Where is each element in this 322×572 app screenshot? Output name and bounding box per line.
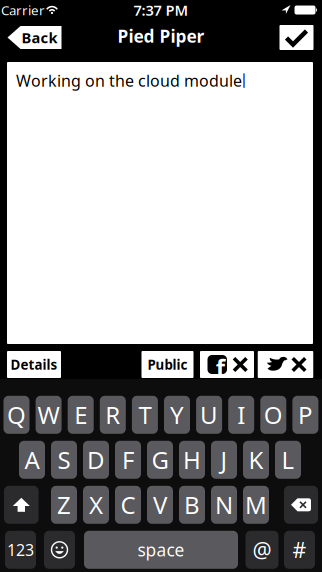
- staticText: D: [87, 444, 105, 476]
- button[interactable]: B: [179, 486, 205, 524]
- staticText: A: [24, 444, 39, 476]
- button[interactable]: U: [196, 396, 222, 434]
- button[interactable]: Shift: [4, 486, 39, 524]
- staticText: E: [74, 399, 87, 431]
- staticText: Back: [21, 28, 57, 47]
- button[interactable]: @: [245, 531, 278, 569]
- staticText: V: [153, 489, 167, 521]
- button[interactable]: Public: [141, 351, 193, 378]
- button[interactable]: Post: [279, 25, 313, 50]
- button[interactable]: O: [260, 396, 286, 434]
- button[interactable]: H: [179, 441, 205, 479]
- staticText: Z: [57, 489, 71, 521]
- staticText: Working on the cloud module: [16, 70, 242, 91]
- staticText: T: [138, 399, 151, 431]
- staticText: M: [245, 489, 267, 521]
- staticText: F: [122, 444, 134, 476]
- button[interactable]: Details: [7, 351, 61, 378]
- staticText: B: [184, 489, 200, 521]
- button[interactable]: E: [68, 396, 94, 434]
- staticText: @: [252, 536, 271, 564]
- button[interactable]: Delete: [284, 486, 318, 524]
- button[interactable]: R: [100, 396, 126, 434]
- staticText: W: [38, 399, 60, 431]
- button[interactable]: Q: [3, 396, 29, 434]
- staticText: O: [264, 399, 283, 431]
- staticText: f: [216, 352, 225, 383]
- staticText: R: [105, 399, 120, 431]
- staticText: N: [215, 489, 233, 521]
- button[interactable]: W: [36, 396, 62, 434]
- staticText: space: [137, 538, 184, 561]
- staticText: U: [200, 399, 218, 431]
- staticText: S: [57, 444, 70, 476]
- button[interactable]: #: [284, 531, 315, 569]
- staticText: Public: [147, 356, 187, 373]
- button[interactable]: Back: [7, 26, 61, 49]
- staticText: Y: [170, 399, 184, 431]
- button[interactable]: G: [147, 441, 173, 479]
- button[interactable]: F: [115, 441, 141, 479]
- button[interactable]: T: [132, 396, 158, 434]
- staticText: Details: [10, 356, 57, 373]
- button[interactable]: L: [275, 441, 301, 479]
- staticText: K: [248, 444, 263, 476]
- staticText: 123: [7, 539, 34, 560]
- button[interactable]: Remove Facebook: [200, 351, 254, 378]
- button[interactable]: P: [292, 396, 318, 434]
- button[interactable]: V: [147, 486, 173, 524]
- button[interactable]: Z: [51, 486, 77, 524]
- button[interactable]: Emoji: [44, 531, 75, 569]
- button[interactable]: Y: [164, 396, 190, 434]
- button[interactable]: space: [84, 531, 238, 569]
- button[interactable]: 123: [5, 531, 36, 569]
- staticText: C: [120, 489, 135, 521]
- button[interactable]: J: [211, 441, 237, 479]
- button[interactable]: D: [83, 441, 109, 479]
- staticText: H: [183, 444, 201, 476]
- button[interactable]: M: [243, 486, 269, 524]
- button[interactable]: N: [211, 486, 237, 524]
- button[interactable]: A: [19, 441, 45, 479]
- staticText: #: [292, 536, 306, 564]
- button[interactable]: I: [228, 396, 254, 434]
- button[interactable]: Remove Twitter: [258, 351, 313, 378]
- staticText: 7:37 PM: [133, 0, 188, 20]
- button[interactable]: K: [243, 441, 269, 479]
- staticText: Carrier: [1, 1, 45, 19]
- button[interactable]: C: [115, 486, 141, 524]
- staticText: J: [220, 444, 227, 476]
- staticText: Q: [7, 399, 26, 431]
- staticText: Pied Piper: [117, 24, 204, 47]
- button[interactable]: S: [51, 441, 77, 479]
- staticText: L: [281, 444, 294, 476]
- staticText: G: [151, 444, 168, 476]
- staticText: X: [89, 489, 103, 521]
- button[interactable]: X: [83, 486, 109, 524]
- staticText: I: [237, 399, 245, 431]
- staticText: P: [298, 399, 313, 431]
